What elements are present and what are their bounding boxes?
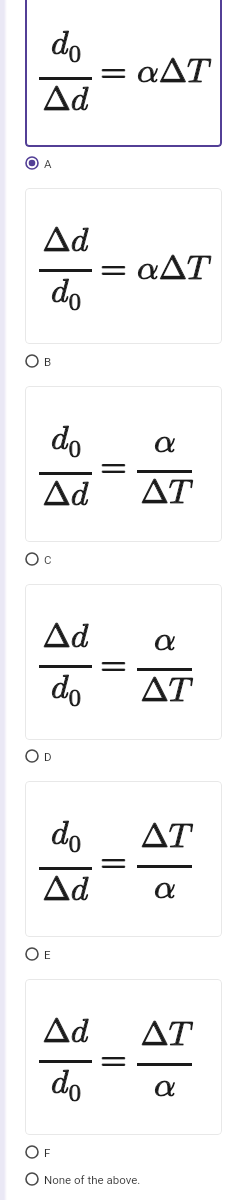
staticText: 𝑑0	[51, 1066, 81, 1105]
staticText: E	[44, 948, 51, 961]
staticText: A	[44, 157, 52, 170]
staticText: =	[100, 450, 127, 484]
staticText: D	[44, 750, 52, 763]
staticText: 𝑑0	[51, 671, 81, 710]
staticText: 𝛼	[154, 623, 176, 657]
staticText: 𝛼	[154, 1069, 176, 1103]
staticText: 𝛼	[154, 425, 176, 459]
staticText: Δ𝑇	[140, 1018, 189, 1052]
staticText: B	[44, 355, 52, 368]
staticText: Δ𝑇	[140, 476, 189, 510]
button[interactable]: A	[0, 150, 238, 176]
staticText: =	[100, 845, 127, 879]
staticText: Δ𝑑	[42, 224, 89, 258]
staticText: Δ𝑑	[42, 873, 89, 907]
staticText: None of the above.	[44, 1173, 141, 1186]
staticText: 𝑑0	[51, 817, 81, 856]
staticText: Δ𝑇	[140, 820, 189, 854]
button[interactable]: 𝑑0	[25, 386, 222, 542]
staticText: Δ𝑇	[140, 476, 189, 510]
staticText: Δ𝑇	[140, 1018, 189, 1052]
staticText: =	[100, 252, 127, 286]
staticText: Δ𝑑	[42, 83, 89, 117]
staticText: C	[44, 553, 52, 566]
staticText: 𝛼	[154, 1069, 176, 1103]
staticText: 𝑑0	[51, 27, 81, 66]
staticText: 𝑑0	[51, 1066, 81, 1105]
staticText: =	[100, 1043, 127, 1077]
button[interactable]: Δ𝑑	[25, 979, 222, 1135]
staticText: Δ𝑑	[42, 620, 89, 654]
button[interactable]: E	[0, 941, 238, 967]
staticText: 𝑑0	[51, 422, 81, 461]
button[interactable]: None of the above.	[0, 1166, 238, 1192]
staticText: F	[44, 1146, 51, 1159]
staticText: Δ𝑑	[42, 478, 89, 512]
button[interactable]: C	[0, 546, 238, 572]
staticText: Δ𝑑	[42, 1015, 89, 1049]
staticText: 𝛼	[154, 871, 176, 905]
staticText: 𝑑0	[51, 671, 81, 710]
button[interactable]: B	[0, 348, 238, 374]
staticText: 𝛼Δ𝑇	[137, 252, 207, 286]
button[interactable]: D	[0, 743, 238, 769]
staticText: Δ𝑑	[42, 1015, 89, 1049]
staticText: 𝑑0	[51, 275, 81, 314]
staticText: Δ𝑇	[140, 674, 189, 708]
staticText: =	[100, 648, 127, 682]
staticText: 𝑑0	[51, 275, 81, 314]
button[interactable]: 𝑑0	[25, 0, 222, 147]
button[interactable]: F	[0, 1139, 238, 1165]
staticText: 𝑑0	[51, 817, 81, 856]
staticText: Δ𝑑	[42, 873, 89, 907]
staticText: =	[100, 450, 127, 484]
staticText: Δ𝑑	[42, 620, 89, 654]
staticText: Δ𝑑	[42, 83, 89, 117]
button[interactable]: Δ𝑑	[25, 188, 222, 344]
staticText: =	[100, 55, 127, 89]
staticText: Δ𝑇	[140, 820, 189, 854]
staticText: =	[100, 1043, 127, 1077]
staticText: =	[100, 252, 127, 286]
staticText: =	[100, 648, 127, 682]
staticText: Δ𝑇	[140, 674, 189, 708]
staticText: Δ𝑑	[42, 224, 89, 258]
staticText: 𝑑0	[51, 422, 81, 461]
staticText: =	[100, 55, 127, 89]
staticText: =	[100, 845, 127, 879]
staticText: Δ𝑑	[42, 478, 89, 512]
staticText: 𝛼Δ𝑇	[137, 55, 207, 89]
button[interactable]: Δ𝑑	[25, 584, 222, 740]
staticText: 𝛼Δ𝑇	[137, 252, 207, 286]
staticText: 𝛼	[154, 623, 176, 657]
staticText: 𝛼	[154, 425, 176, 459]
button[interactable]: 𝑑0	[25, 781, 222, 937]
staticText: 𝛼Δ𝑇	[137, 55, 207, 89]
staticText: 𝑑0	[51, 27, 81, 66]
staticText: 𝛼	[154, 871, 176, 905]
